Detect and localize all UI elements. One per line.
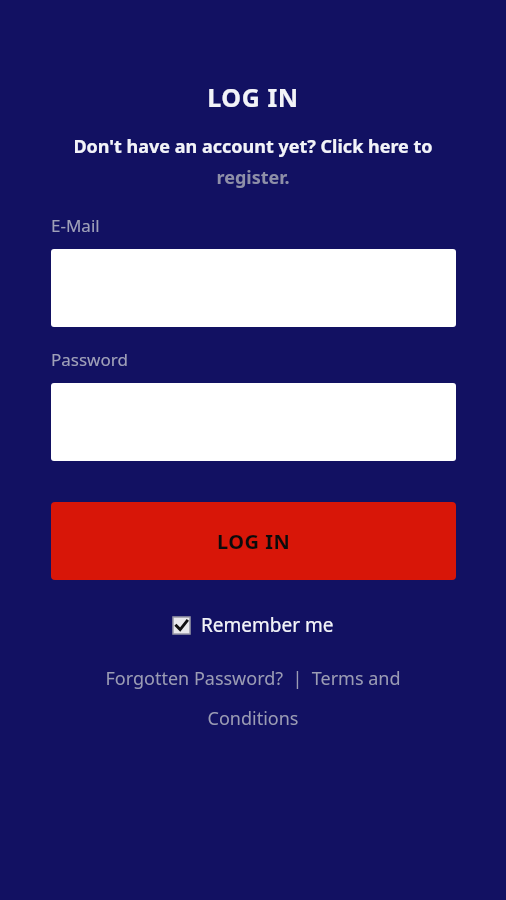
button[interactable]: Forgotten Password? | Terms and Conditio… [83,666,423,730]
staticText: LOG IN [0,80,506,114]
staticText: Password [51,348,128,371]
staticText: E-Mail [51,214,100,237]
staticText: Forgotten Password? | Terms and Conditio… [83,666,423,730]
staticText: Don't have an account yet? Click here to [28,134,478,159]
button[interactable]: LOG IN [51,502,456,580]
button[interactable]: Don't have an account yet? Click here to [0,134,506,190]
button[interactable]: Remember me [169,610,338,640]
staticText: LOG IN [217,528,291,555]
staticText: Remember me [201,612,334,638]
staticText: register. [28,165,478,190]
